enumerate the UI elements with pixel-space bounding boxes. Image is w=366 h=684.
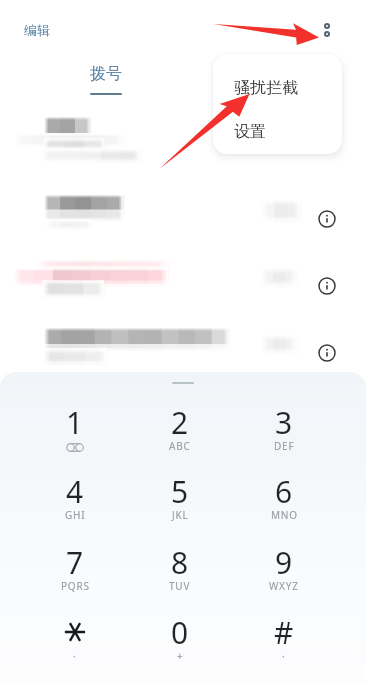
staticText: JKL [172,508,189,522]
button[interactable]: 4 [23,471,127,541]
button[interactable]: 9 [232,542,336,612]
button[interactable]: 2 [128,402,232,472]
staticText: WXYZ [269,579,299,593]
button[interactable]: 5 [128,471,232,541]
staticText: 设置 [234,122,266,142]
staticText: ABC [169,439,191,453]
button[interactable]: 0 [128,612,232,682]
button[interactable]: More options [309,12,345,48]
staticText: 编辑 [24,22,50,38]
button[interactable]: · [23,612,127,682]
button[interactable]: 7 [23,542,127,612]
staticText: 4 [66,471,84,512]
staticText: MNO [271,508,298,522]
staticText: 0 [171,612,189,653]
staticText: # [274,612,294,653]
button[interactable]: 1 [23,402,127,472]
button[interactable]: 8 [128,542,232,612]
staticText: · [73,649,77,663]
staticText: · [282,649,286,663]
staticText: 6 [275,471,293,512]
button[interactable] [0,320,366,382]
staticText: PQRS [61,579,90,593]
staticText: 骚扰拦截 [234,78,298,98]
button[interactable] [0,110,366,172]
button[interactable]: 骚扰拦截 [213,62,342,114]
staticText: 3 [275,402,293,443]
staticText: TUV [169,579,191,593]
staticText: 5 [171,471,189,512]
staticText: 9 [275,542,293,583]
staticText: GHI [65,508,86,522]
button[interactable]: 3 [232,402,336,472]
button[interactable]: 设置 [213,112,342,152]
staticText: 8 [171,542,189,583]
staticText: + [177,649,184,663]
button[interactable] [0,253,366,315]
button[interactable]: # [232,612,336,682]
staticText: DEF [274,439,295,453]
button[interactable]: Call details [310,336,344,370]
button[interactable]: Call details [310,202,344,236]
button[interactable]: 拨号 [90,64,122,95]
button[interactable] [0,186,366,248]
staticText: 1 [66,402,84,443]
staticText: 7 [66,542,84,583]
button[interactable]: 6 [232,471,336,541]
button[interactable]: 编辑 [18,18,56,42]
staticText: 拨号 [90,64,122,84]
staticText: 2 [171,402,189,443]
button[interactable]: Call details [310,269,344,303]
